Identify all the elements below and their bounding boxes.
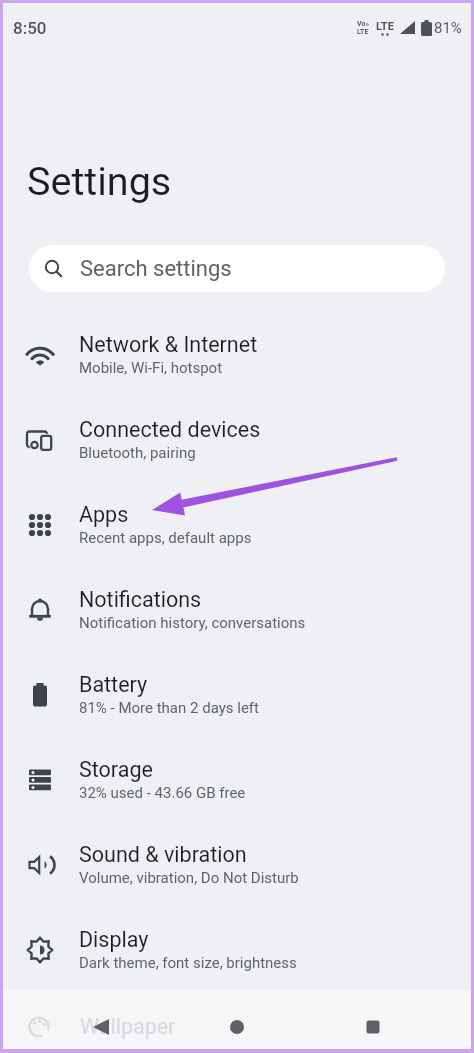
- staticText: 81% - More than 2 days left: [79, 699, 259, 717]
- staticText: Apps: [79, 502, 129, 527]
- staticText: Display: [79, 927, 149, 952]
- button[interactable]: [3, 990, 159, 1049]
- button[interactable]: [315, 990, 471, 1049]
- staticText: Battery: [79, 672, 148, 697]
- staticText: 32% used - 43.66 GB free: [79, 784, 246, 802]
- button[interactable]: Notifications: [3, 567, 471, 652]
- button[interactable]: Apps: [3, 482, 471, 567]
- staticText: 8:50: [13, 18, 47, 38]
- button[interactable]: Battery: [3, 652, 471, 737]
- staticText: Bluetooth, pairing: [79, 444, 196, 462]
- staticText: Sound & vibration: [79, 842, 247, 867]
- staticText: Connected devices: [79, 417, 261, 442]
- staticText: Notification history, conversations: [79, 614, 306, 632]
- staticText: Mobile, Wi-Fi, hotspot: [79, 359, 223, 377]
- staticText: LTE: [357, 28, 369, 36]
- staticText: Volume, vibration, Do Not Disturb: [79, 869, 299, 887]
- staticText: LTE: [376, 20, 394, 33]
- button[interactable]: Network & Internet: [3, 312, 471, 397]
- button[interactable]: Storage: [3, 737, 471, 822]
- staticText: Network & Internet: [79, 332, 258, 357]
- button[interactable]: Search settings: [29, 245, 445, 292]
- staticText: Recent apps, default apps: [79, 529, 252, 547]
- staticText: Search settings: [80, 256, 232, 282]
- button[interactable]: Connected devices: [3, 397, 471, 482]
- staticText: 81%: [434, 19, 462, 37]
- button[interactable]: Sound & vibration: [3, 822, 471, 907]
- staticText: Vo»: [357, 20, 369, 28]
- staticText: Settings: [27, 158, 172, 204]
- button[interactable]: Display: [3, 907, 471, 992]
- staticText: Storage: [79, 757, 153, 782]
- staticText: Wallpaper: [80, 1014, 176, 1039]
- staticText: Dark theme, font size, brightness: [79, 954, 297, 972]
- staticText: Notifications: [79, 587, 202, 612]
- button[interactable]: [159, 990, 315, 1049]
